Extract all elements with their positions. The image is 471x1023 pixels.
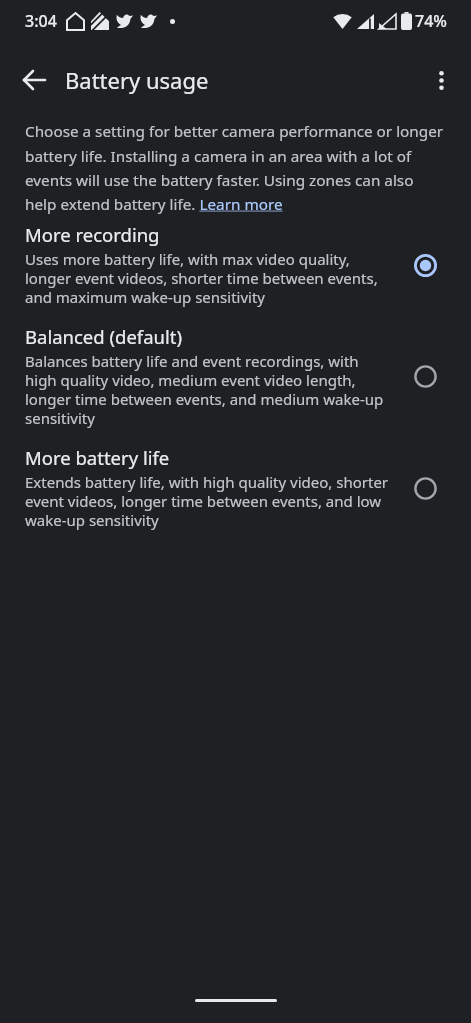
button[interactable] — [14, 60, 54, 100]
staticText: Uses more battery life, with max video q… — [25, 249, 378, 308]
staticText: Balanced (default) — [25, 324, 183, 349]
staticText: Extends battery life, with high quality … — [25, 472, 389, 531]
staticText: 3:04 — [25, 10, 57, 32]
button[interactable] — [419, 58, 463, 102]
staticText: Choose a setting for better camera perfo… — [25, 121, 444, 214]
button[interactable]: Balanced (default) — [0, 324, 471, 429]
button[interactable]: More recording — [0, 222, 471, 308]
staticText: Battery usage — [65, 65, 209, 95]
staticText: 74% — [415, 10, 447, 32]
button[interactable]: More battery life — [0, 445, 471, 531]
staticText: More recording — [25, 222, 160, 247]
staticText: More battery life — [25, 445, 170, 470]
staticText: Balances battery life and event recordin… — [25, 351, 384, 429]
